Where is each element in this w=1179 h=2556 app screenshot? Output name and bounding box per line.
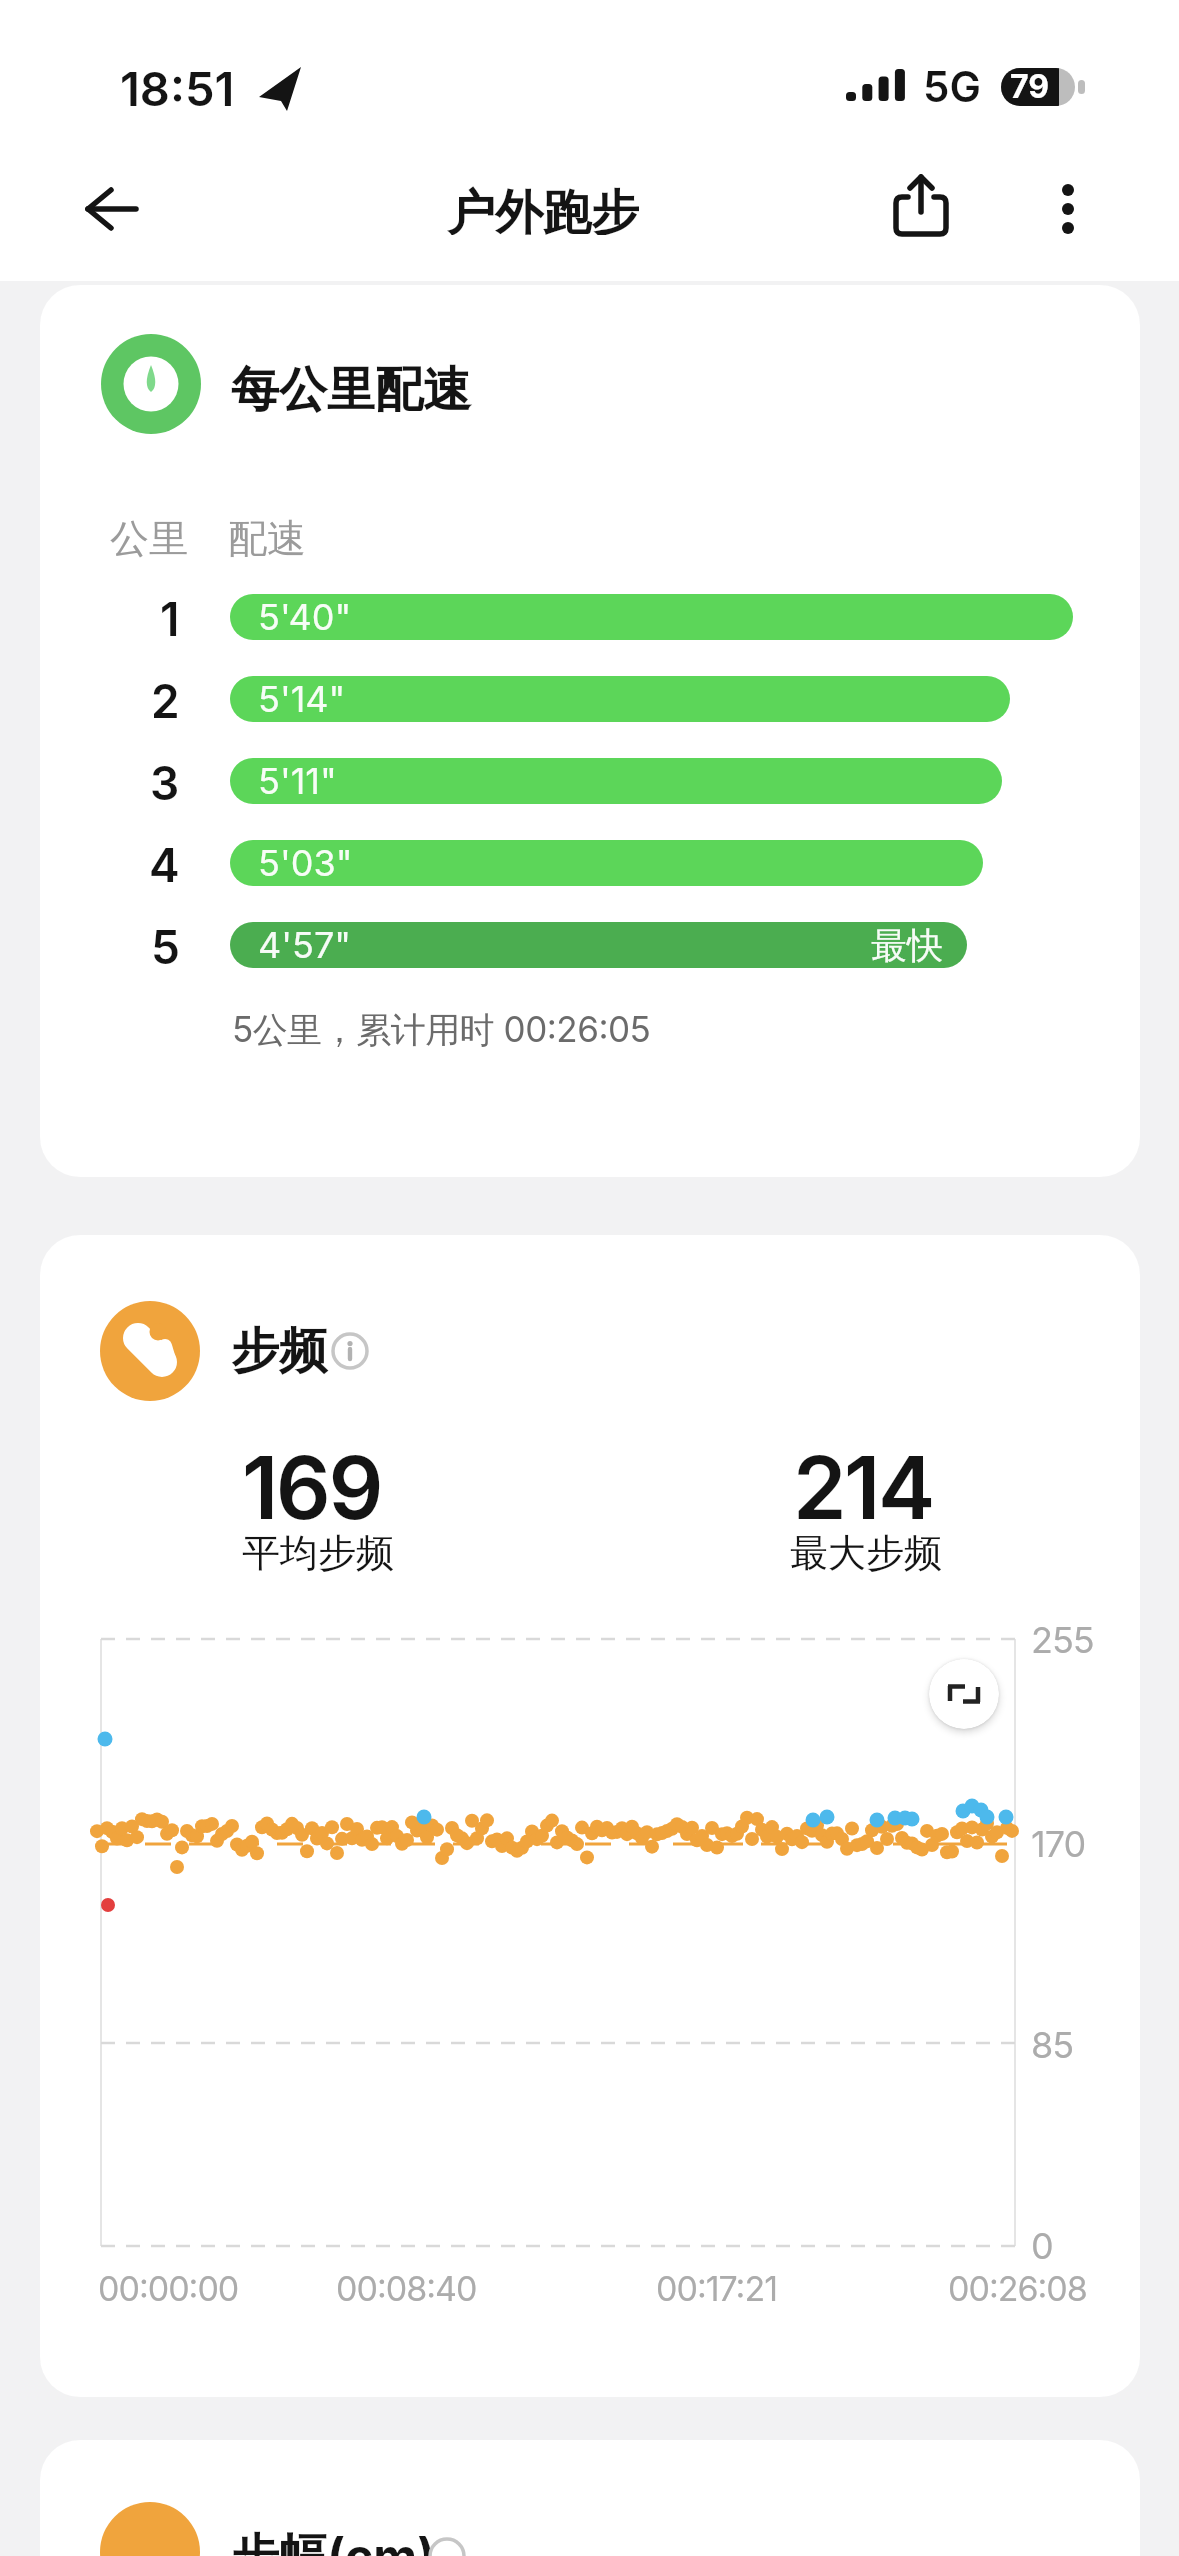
staticText: 00:26:08 bbox=[948, 2268, 1087, 2309]
staticText: 平均步频 bbox=[242, 1529, 394, 1577]
staticText: 214 bbox=[793, 1436, 933, 1526]
staticText: 169 bbox=[242, 1436, 381, 1526]
staticText: 最大步频 bbox=[790, 1529, 942, 1577]
staticText: 步频 bbox=[231, 1321, 327, 1381]
staticText: 5'11" bbox=[258, 759, 337, 803]
staticText: 18:51 bbox=[120, 60, 235, 112]
button[interactable] bbox=[328, 1329, 372, 1373]
button[interactable] bbox=[1040, 170, 1096, 250]
staticText: 79 bbox=[1010, 67, 1050, 106]
button[interactable] bbox=[929, 1659, 999, 1729]
staticText: 5'14" bbox=[258, 677, 346, 721]
staticText: 5'40" bbox=[258, 595, 352, 639]
staticText: 3 bbox=[150, 755, 180, 807]
staticText: 0 bbox=[1031, 2224, 1053, 2268]
staticText: 5G bbox=[923, 61, 981, 112]
staticText: 配速 bbox=[228, 514, 306, 563]
staticText: 5 bbox=[151, 919, 180, 971]
staticText: 5'03" bbox=[258, 841, 353, 885]
staticText: 255 bbox=[1031, 1618, 1094, 1662]
staticText: 每公里配速 bbox=[231, 360, 471, 420]
button[interactable] bbox=[883, 165, 963, 255]
staticText: 170 bbox=[1031, 1822, 1086, 1866]
staticText: 步幅(cm) bbox=[231, 2526, 436, 2556]
staticText: 4 bbox=[149, 837, 180, 889]
staticText: 00:08:40 bbox=[336, 2268, 477, 2309]
staticText: 公里 bbox=[110, 514, 188, 563]
staticText: 5公里，累计用时 00:26:05 bbox=[232, 1008, 651, 1052]
staticText: 最快 bbox=[871, 923, 943, 968]
staticText: 00:00:00 bbox=[98, 2268, 239, 2309]
button[interactable] bbox=[68, 178, 152, 240]
staticText: 00:17:21 bbox=[656, 2268, 777, 2309]
staticText: 4'57" bbox=[258, 923, 352, 967]
staticText: 户外跑步 bbox=[447, 183, 639, 235]
staticText: 2 bbox=[151, 673, 180, 725]
staticText: 1 bbox=[160, 591, 180, 643]
staticText: 85 bbox=[1031, 2023, 1074, 2067]
